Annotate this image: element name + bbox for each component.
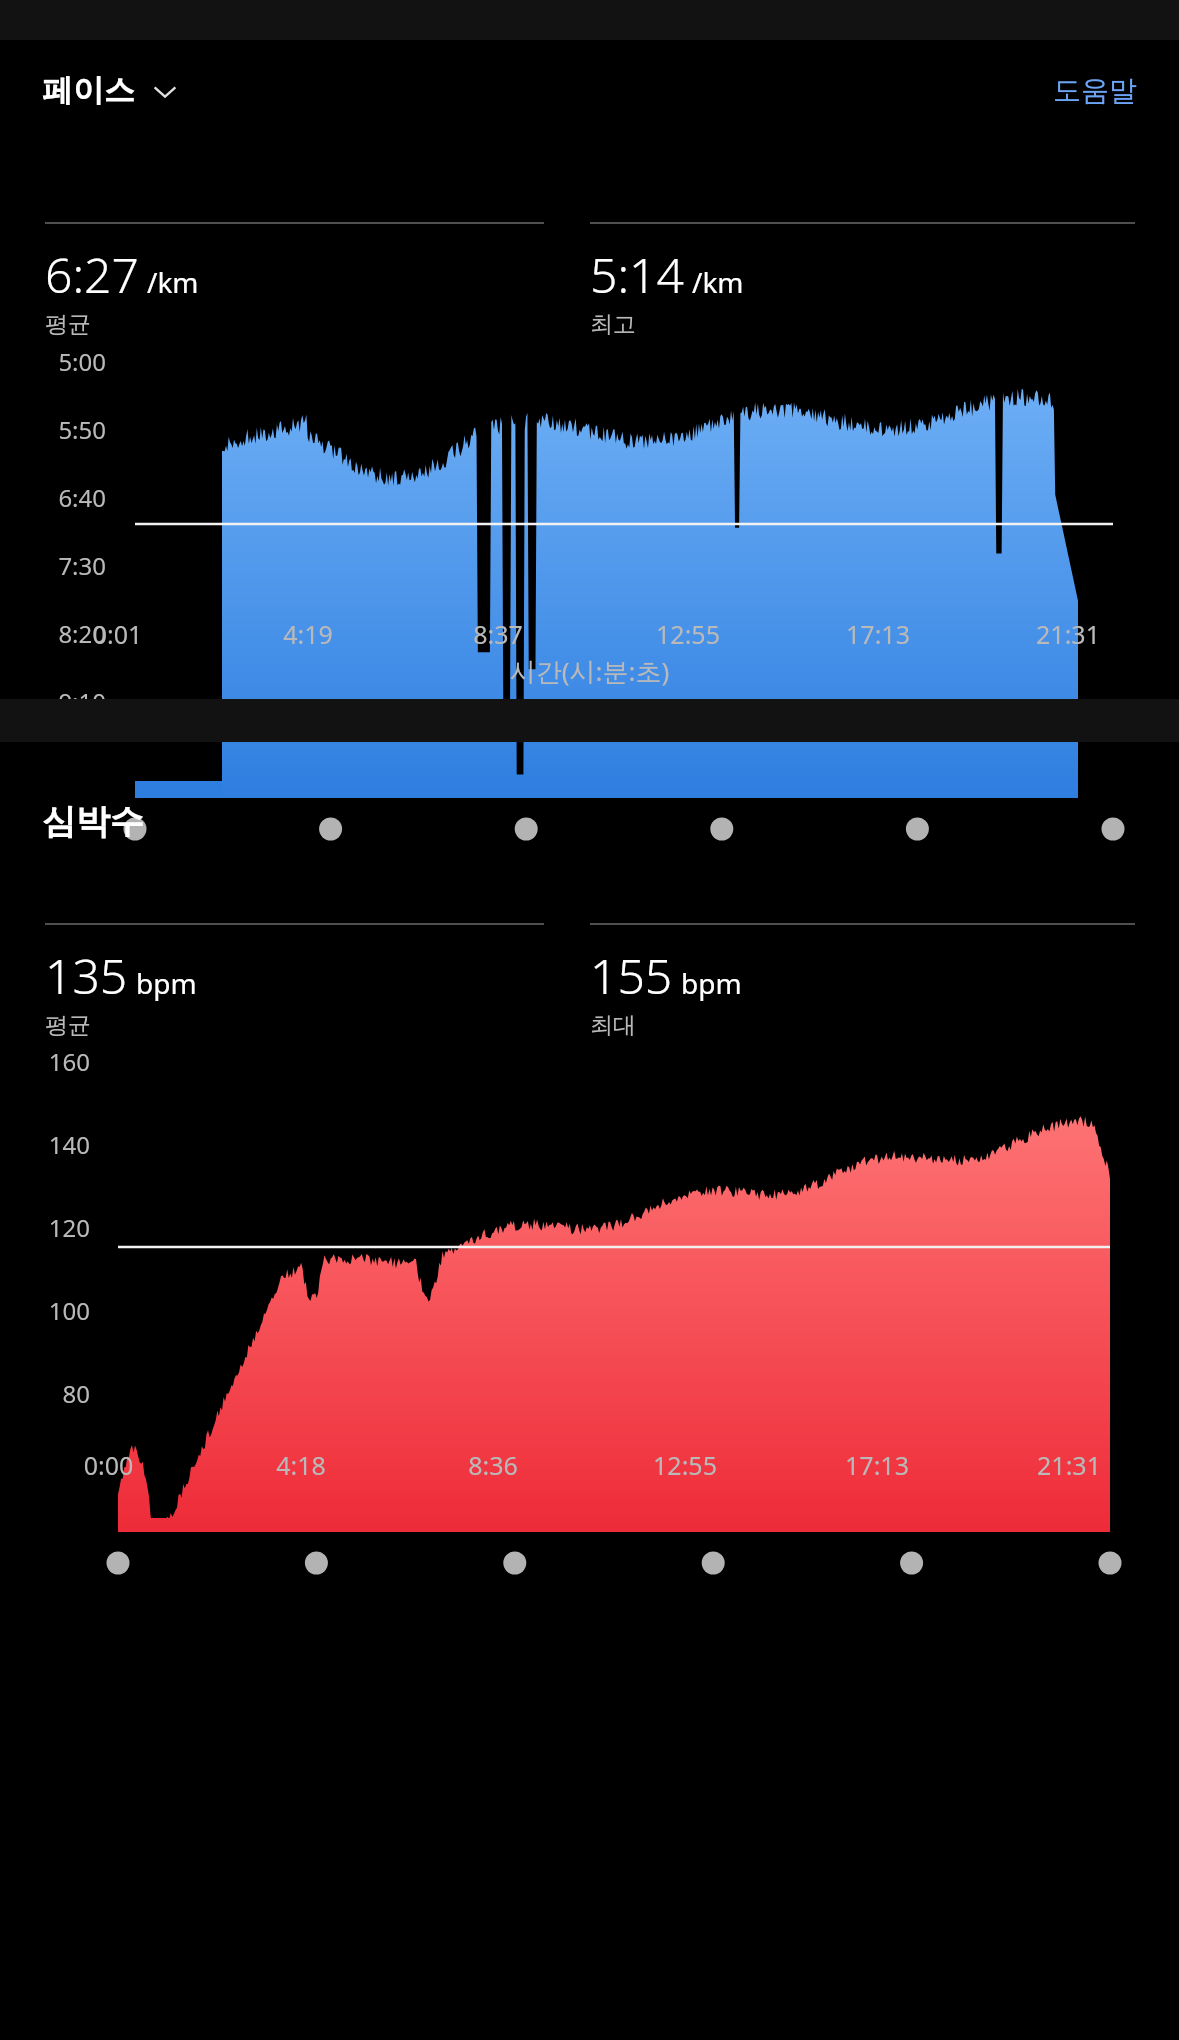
- staticText: 160: [0, 1045, 90, 1078]
- staticText: 6:27: [45, 242, 139, 307]
- staticText: 최대: [590, 1011, 636, 1040]
- staticText: 최고: [590, 310, 636, 339]
- staticText: 155: [590, 943, 673, 1008]
- staticText: 5:50: [0, 413, 106, 446]
- staticText: 8:37: [403, 617, 593, 651]
- staticText: 4:19: [213, 617, 403, 651]
- button[interactable]: 도움말: [1053, 73, 1137, 108]
- staticText: 시간(시:분:초): [0, 653, 1179, 689]
- staticText: 21:31: [973, 1448, 1165, 1482]
- staticText: 5:00: [0, 345, 106, 378]
- staticText: 7:30: [0, 549, 106, 582]
- staticText: 21:31: [973, 617, 1163, 651]
- staticText: bpm: [136, 964, 197, 1002]
- staticText: /km: [692, 263, 744, 301]
- button[interactable]: 페이스: [42, 71, 179, 110]
- staticText: 0:00: [12, 1448, 205, 1482]
- staticText: 12:55: [589, 1448, 781, 1482]
- staticText: 6:40: [0, 481, 106, 514]
- staticText: 100: [0, 1294, 90, 1327]
- other: Change metric: [151, 77, 179, 105]
- staticText: 8:36: [397, 1448, 589, 1482]
- staticText: 도움말: [1053, 73, 1137, 108]
- staticText: 140: [0, 1128, 90, 1161]
- staticText: 평균: [45, 310, 91, 339]
- staticText: 135: [45, 943, 128, 1008]
- staticText: 17:13: [781, 1448, 973, 1482]
- staticText: 9:10: [0, 685, 106, 718]
- staticText: bpm: [681, 964, 742, 1002]
- staticText: 12:55: [593, 617, 783, 651]
- staticText: 0:01: [22, 617, 213, 651]
- staticText: 평균: [45, 1011, 91, 1040]
- button[interactable]: 심박수: [42, 800, 144, 843]
- staticText: 17:13: [783, 617, 973, 651]
- staticText: 80: [0, 1377, 90, 1410]
- staticText: 5:14: [590, 242, 684, 307]
- staticText: 심박수: [42, 800, 144, 843]
- staticText: 4:18: [205, 1448, 397, 1482]
- staticText: 페이스: [42, 71, 135, 110]
- staticText: /km: [147, 263, 199, 301]
- staticText: 8:20: [0, 617, 106, 650]
- staticText: 120: [0, 1211, 90, 1244]
